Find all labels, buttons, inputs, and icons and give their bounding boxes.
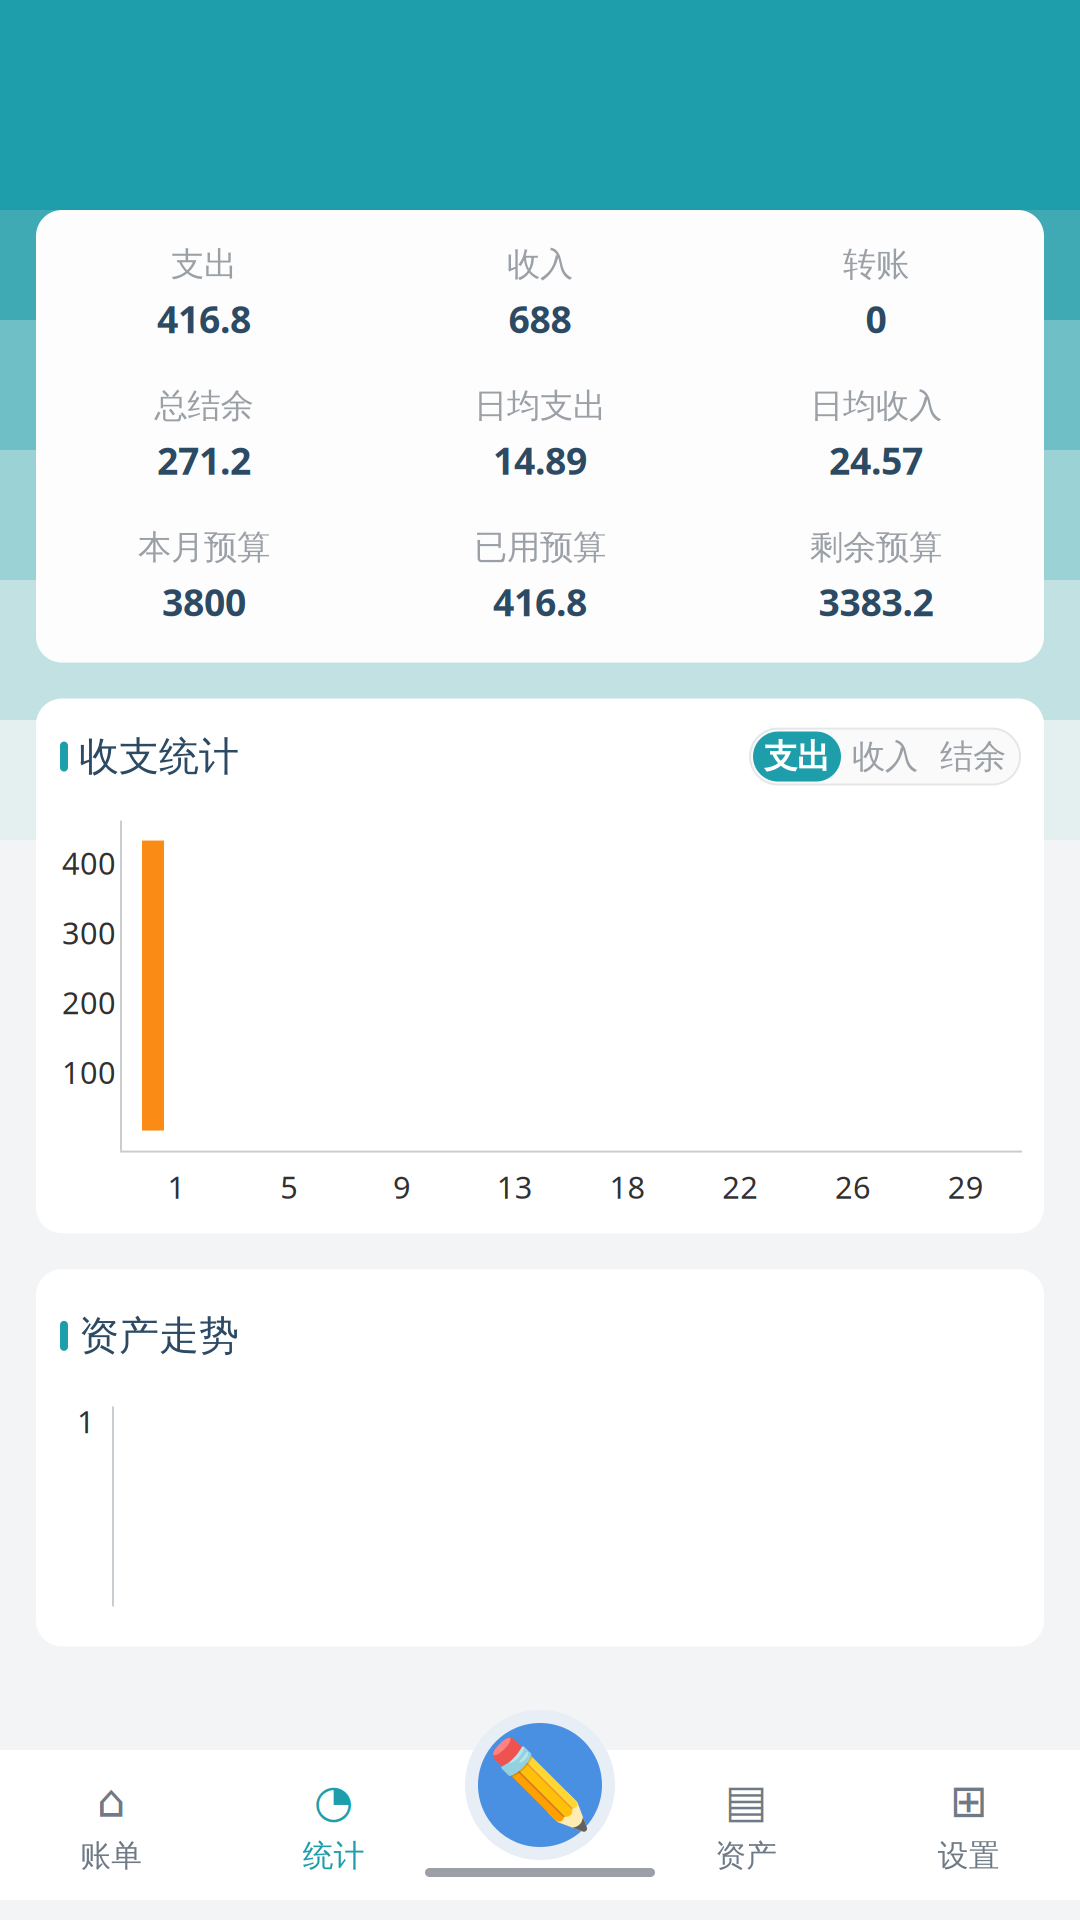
- staticText: 22: [722, 1167, 758, 1207]
- button[interactable]: ◔: [222, 1761, 445, 1888]
- staticText: 收支统计: [79, 732, 239, 781]
- staticText: 已用预算: [474, 527, 606, 568]
- staticText: 3800: [162, 577, 246, 627]
- staticText: 2月1日 - 2月29日: [420, 173, 660, 213]
- staticText: 1: [167, 1167, 185, 1207]
- staticText: 支出: [764, 736, 830, 777]
- button[interactable]: Add record: [465, 1710, 615, 1860]
- staticText: 1: [77, 1401, 95, 1442]
- staticText: ⌂: [97, 1775, 126, 1827]
- staticText: 416.8: [493, 577, 587, 627]
- staticText: 转账: [843, 244, 909, 285]
- staticText: ⊞: [950, 1775, 988, 1827]
- staticText: 资产走势: [79, 1311, 239, 1360]
- staticText: 9: [393, 1167, 411, 1207]
- staticText: 总结余: [154, 385, 253, 426]
- staticText: 271.2: [157, 435, 251, 485]
- button[interactable]: ⌂: [0, 1761, 222, 1888]
- staticText: 24.57: [829, 435, 923, 485]
- button[interactable]: 收入: [841, 732, 929, 782]
- staticText: 18: [609, 1167, 645, 1207]
- staticText: 3383.2: [818, 577, 933, 627]
- button[interactable]: 支出: [753, 732, 841, 782]
- staticText: 设置: [938, 1837, 1000, 1875]
- staticText: 5: [280, 1167, 298, 1207]
- staticText: 200: [62, 982, 116, 1023]
- staticText: 结余: [940, 736, 1006, 777]
- staticText: 400: [62, 843, 116, 883]
- staticText: 300: [62, 912, 116, 953]
- staticText: 26: [835, 1167, 871, 1207]
- staticText: 日均支出: [474, 385, 606, 426]
- staticText: 13: [497, 1167, 533, 1207]
- staticText: 统计: [303, 1837, 365, 1875]
- staticText: 账单: [80, 1837, 142, 1875]
- staticText: 29: [948, 1167, 984, 1207]
- button[interactable]: ▤: [635, 1761, 857, 1888]
- staticText: 收入: [852, 736, 918, 777]
- staticText: ✏️: [487, 1736, 593, 1834]
- staticText: 日均收入: [810, 385, 942, 426]
- staticText: 416.8: [157, 294, 251, 343]
- staticText: 支出: [171, 244, 237, 285]
- staticText: 本月预算: [138, 527, 270, 568]
- staticText: 收入: [507, 244, 573, 285]
- button[interactable]: 结余: [929, 732, 1017, 782]
- button[interactable]: ⊞: [857, 1761, 1080, 1888]
- staticText: 0: [865, 294, 886, 343]
- staticText: 100: [62, 1052, 116, 1092]
- staticText: ▤: [725, 1775, 768, 1827]
- staticText: 688: [508, 294, 571, 343]
- staticText: 剩余预算: [810, 527, 942, 568]
- staticText: ◔: [314, 1775, 354, 1827]
- staticText: 资产: [715, 1837, 777, 1875]
- staticText: 14.89: [493, 435, 587, 485]
